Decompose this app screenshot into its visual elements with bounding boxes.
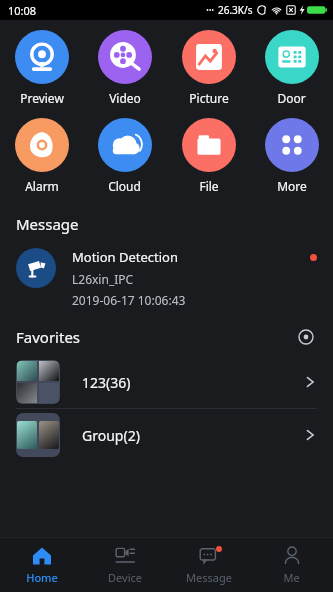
button[interactable]: Message <box>167 538 250 585</box>
staticText: File <box>199 178 219 194</box>
button[interactable]: 123(36) <box>0 356 333 408</box>
staticText: More <box>277 178 307 194</box>
button[interactable]: Picture <box>167 28 250 108</box>
staticText: Device <box>108 570 142 585</box>
staticText: 2019-06-17 10:06:43 <box>72 292 186 308</box>
button[interactable]: Manage favorites <box>295 326 317 348</box>
button[interactable]: More <box>250 116 333 196</box>
button[interactable]: File <box>167 116 250 196</box>
button[interactable]: Alarm <box>0 116 83 196</box>
button[interactable]: Video <box>83 28 166 108</box>
staticText: Alarm <box>25 178 59 194</box>
button[interactable]: Door <box>250 28 333 108</box>
button[interactable]: Group(2) <box>0 409 333 461</box>
staticText: 123(36) <box>82 373 303 392</box>
staticText: 10:08 <box>8 3 37 18</box>
staticText: Cloud <box>108 178 141 194</box>
staticText: Door <box>277 90 306 106</box>
button[interactable]: Preview <box>0 28 83 108</box>
button[interactable]: Cloud <box>83 116 166 196</box>
staticText: 26.3K/s <box>218 3 253 17</box>
staticText: Picture <box>189 90 229 106</box>
staticText: Group(2) <box>82 426 303 445</box>
button[interactable]: Motion Detection <box>0 244 333 312</box>
staticText: Preview <box>20 90 64 106</box>
button[interactable]: Device <box>83 538 166 585</box>
button[interactable]: Home <box>0 538 83 585</box>
staticText: Home <box>26 570 58 585</box>
staticText: L26xin_IPC <box>72 271 134 287</box>
staticText: Message <box>16 214 79 234</box>
staticText: Motion Detection <box>72 248 179 266</box>
staticText: Video <box>109 90 141 106</box>
staticText: Me <box>283 570 300 585</box>
button[interactable]: Me <box>250 538 333 585</box>
staticText: Message <box>186 570 232 585</box>
staticText: Favorites <box>16 327 295 347</box>
